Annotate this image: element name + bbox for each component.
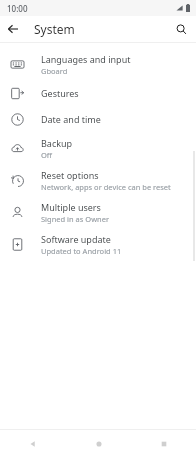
button[interactable]: Search: [168, 16, 194, 42]
button[interactable]: Multiple users: [0, 196, 196, 228]
button[interactable]: Back: [0, 16, 26, 42]
staticText: Backup: [41, 137, 73, 149]
button[interactable]: Back: [0, 430, 66, 458]
staticText: Off: [41, 150, 53, 160]
button[interactable]: Home: [66, 430, 131, 458]
staticText: Date and time: [41, 113, 101, 125]
button[interactable]: Software update: [0, 228, 196, 260]
staticText: Reset options: [41, 169, 99, 181]
button[interactable]: Recents: [131, 430, 196, 458]
button[interactable]: Gestures: [0, 80, 196, 106]
button[interactable]: Languages and input: [0, 48, 196, 80]
staticText: Network, apps or device can be reset: [41, 182, 171, 192]
staticText: System: [34, 21, 75, 37]
staticText: Multiple users: [41, 201, 101, 213]
staticText: Gboard: [41, 66, 68, 76]
staticText: Gestures: [41, 87, 79, 99]
staticText: 10:00: [7, 3, 28, 14]
staticText: Signed in as Owner: [41, 214, 110, 224]
button[interactable]: Backup: [0, 132, 196, 164]
staticText: Languages and input: [41, 53, 131, 65]
button[interactable]: Reset options: [0, 164, 196, 196]
staticText: Software update: [41, 233, 111, 245]
button[interactable]: Date and time: [0, 106, 196, 132]
staticText: Updated to Android 11: [41, 246, 122, 256]
